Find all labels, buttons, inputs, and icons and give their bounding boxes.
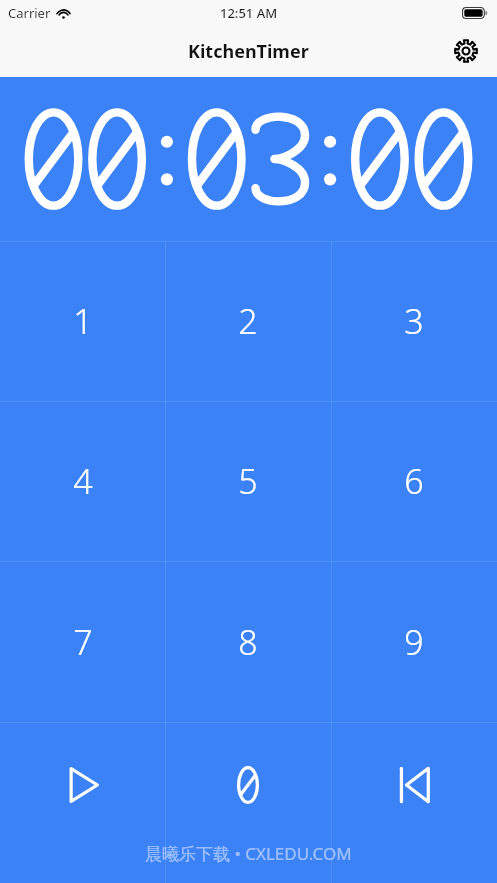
button[interactable]: 6 [331,401,497,561]
staticText: 9 [404,619,424,665]
staticText: 5 [238,458,258,504]
button[interactable]: 3 [331,241,497,401]
button[interactable]: 2 [165,241,331,401]
button[interactable]: Start [0,722,165,883]
staticText: 4 [73,458,93,504]
button[interactable] [165,722,331,883]
button[interactable]: Reset [331,722,497,883]
staticText: Carrier [8,4,51,22]
button[interactable]: 9 [331,561,497,722]
button[interactable]: Settings [449,34,483,68]
staticText: 12:51 AM [220,4,278,22]
staticText: 3 [404,298,424,344]
staticText: 1 [73,298,93,344]
staticText: 2 [238,298,258,344]
button[interactable]: 8 [165,561,331,722]
button[interactable]: 4 [0,401,165,561]
staticText: KitchenTimer [188,39,309,64]
staticText: 7 [73,619,93,665]
button[interactable]: 7 [0,561,165,722]
staticText: 8 [238,619,258,665]
staticText: 晨曦乐下载 • CXLEDU.COM [145,842,352,865]
staticText: 6 [404,458,424,504]
button[interactable]: 1 [0,241,165,401]
button[interactable]: 5 [165,401,331,561]
